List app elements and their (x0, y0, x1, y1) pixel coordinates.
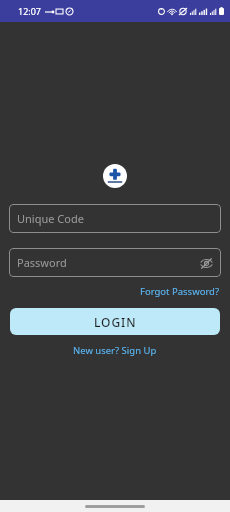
button[interactable]: LOGIN (10, 308, 220, 335)
button[interactable]: Show password (198, 255, 214, 271)
staticText: 12:07 (18, 5, 42, 17)
staticText: New user? Sign Up (73, 344, 157, 357)
staticText: LOGIN (94, 314, 137, 330)
staticText: Password (17, 255, 67, 270)
button[interactable]: Forgot Password? (130, 283, 230, 300)
button[interactable]: Password (9, 248, 221, 277)
staticText: Unique Code (17, 211, 84, 226)
button[interactable]: New user? Sign Up (65, 342, 165, 359)
staticText: Forgot Password? (140, 285, 220, 298)
button[interactable]: Unique Code (9, 204, 221, 233)
